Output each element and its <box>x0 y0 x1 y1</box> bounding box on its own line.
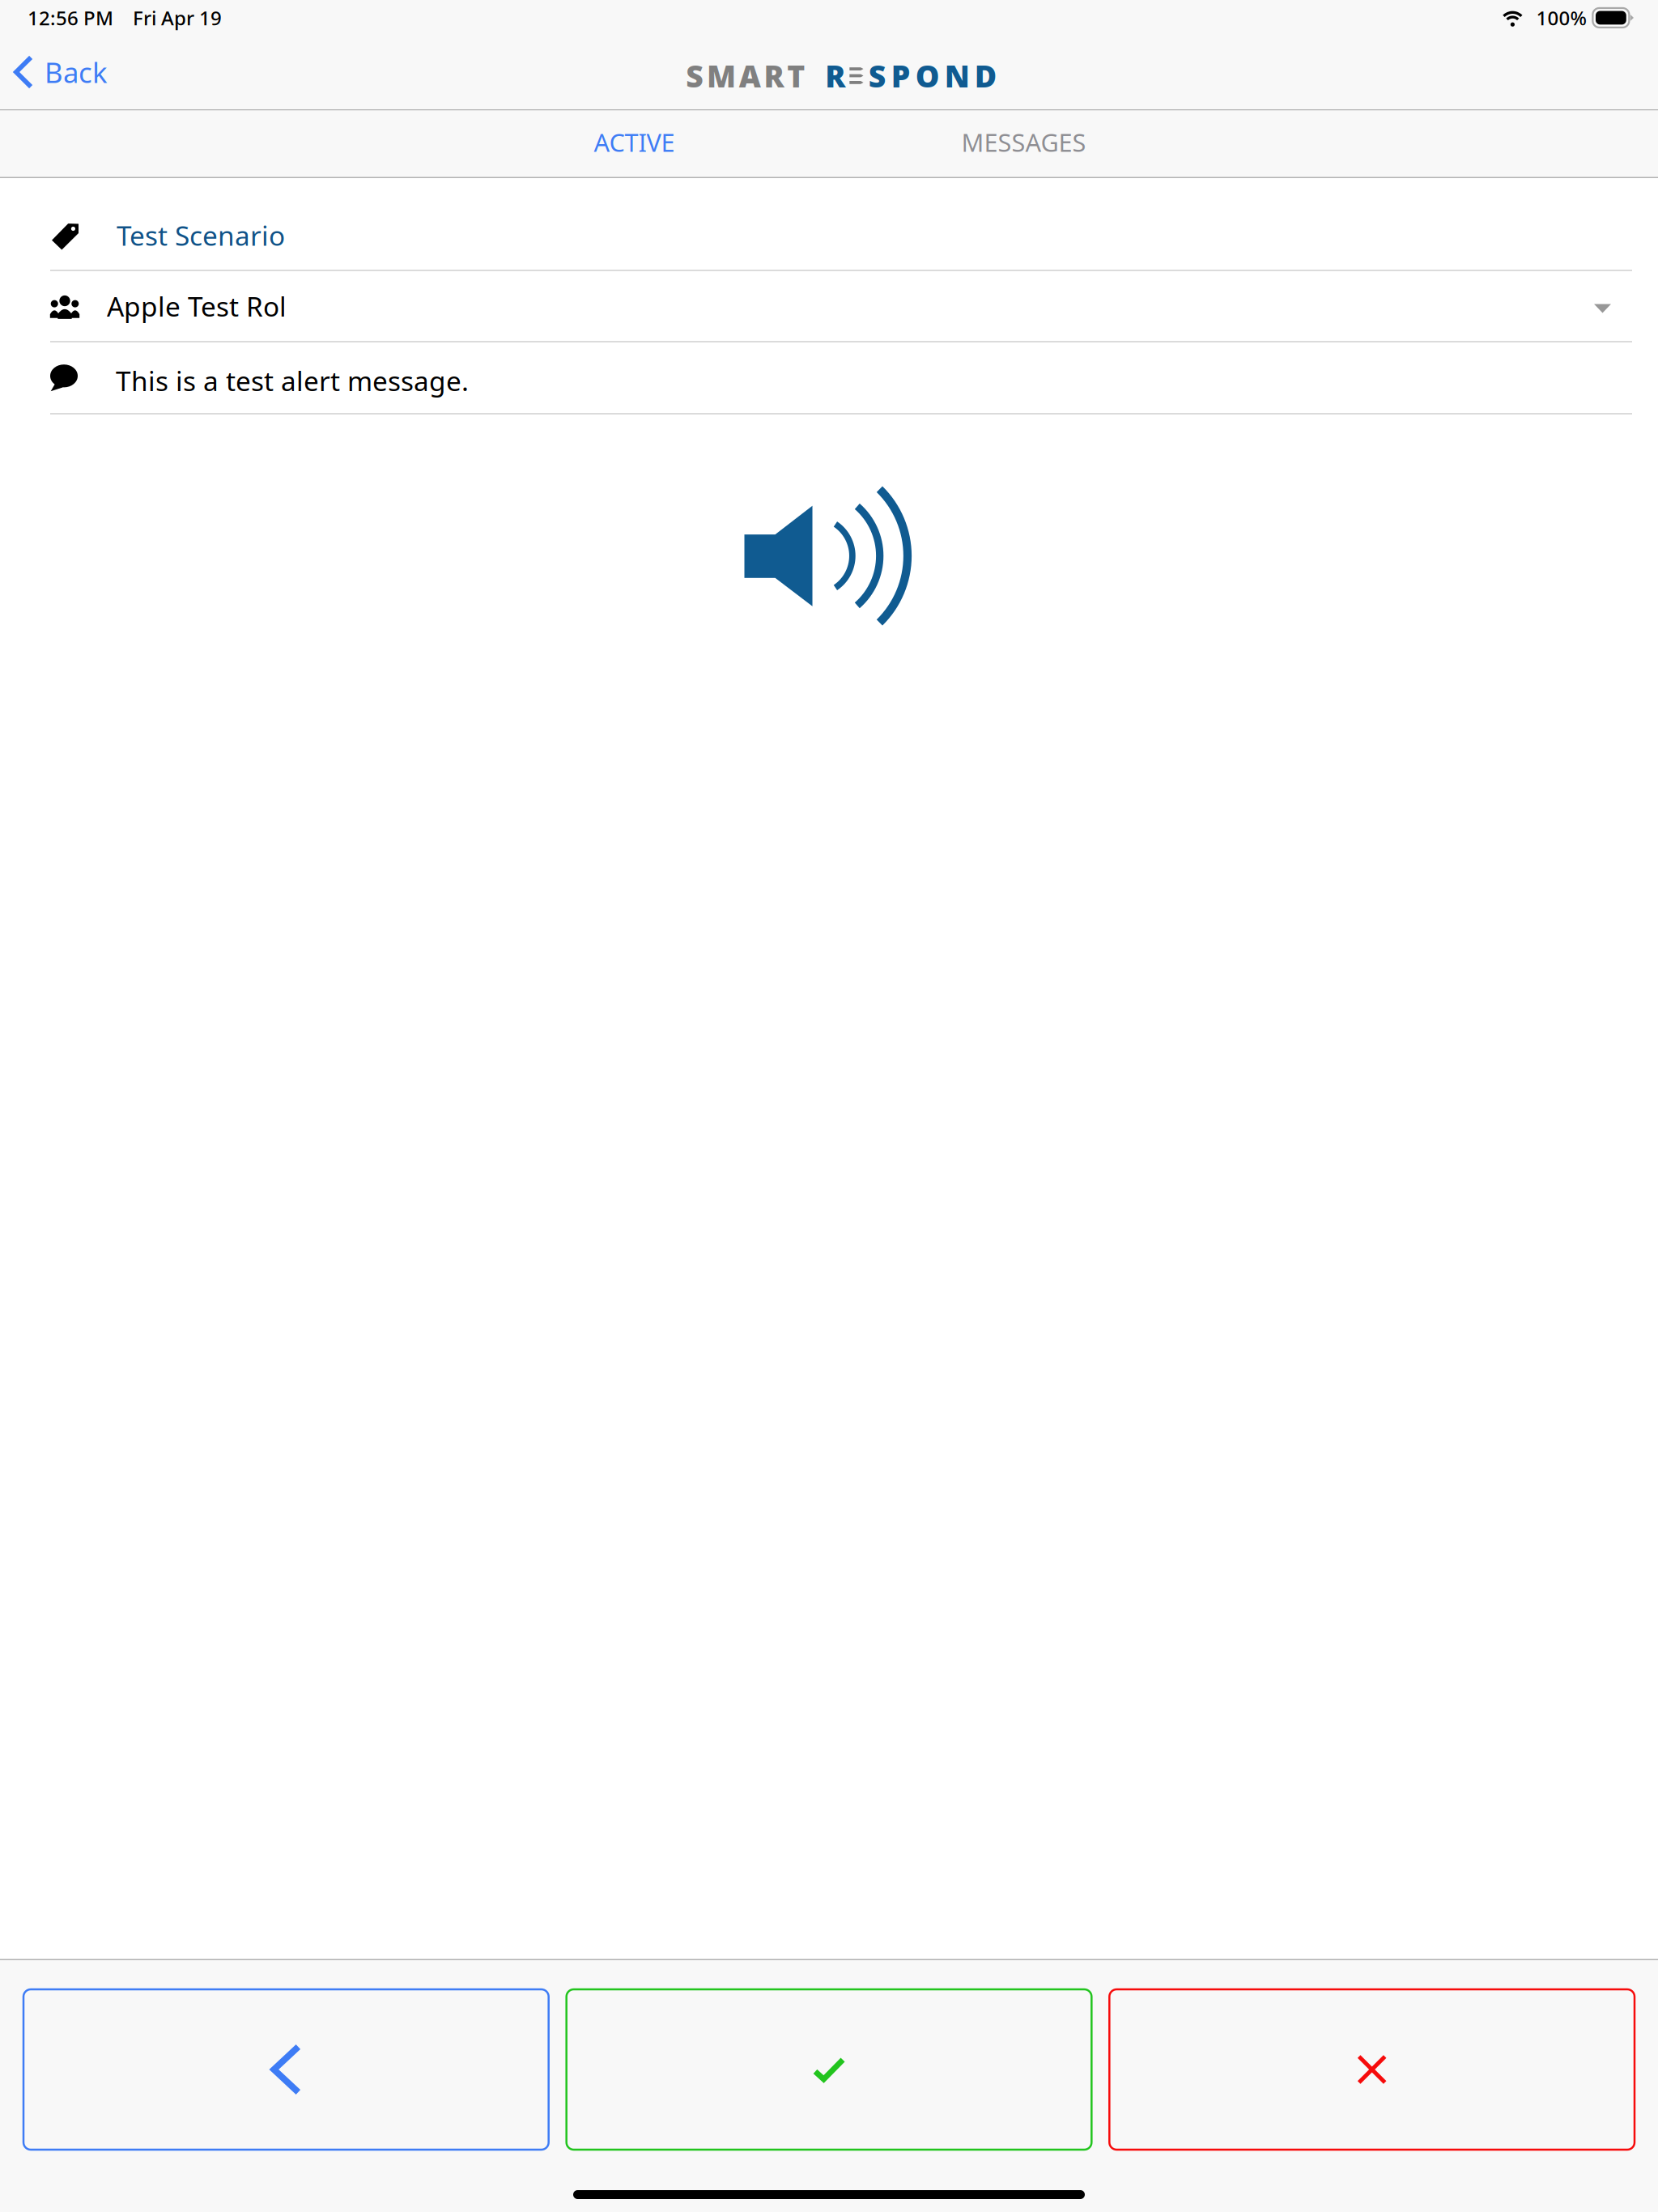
button[interactable]: Accept <box>566 1989 1092 2150</box>
button[interactable]: Test Scenario <box>0 201 1658 271</box>
staticText: S <box>868 56 886 96</box>
staticText: R <box>764 56 784 96</box>
staticText: 100% <box>1536 5 1586 31</box>
staticText: D <box>974 56 996 96</box>
staticText: T <box>787 56 805 96</box>
staticText: Test Scenario <box>117 217 285 253</box>
staticText: R <box>825 56 845 96</box>
button[interactable]: Decline <box>1109 1989 1635 2150</box>
staticText: MESSAGES <box>961 126 1086 159</box>
button[interactable]: MESSAGES <box>829 111 1218 177</box>
button[interactable]: Back <box>0 53 162 98</box>
staticText: S <box>686 56 704 96</box>
staticText: P <box>891 56 911 96</box>
staticText: M <box>707 56 736 96</box>
button[interactable]: ACTIVE <box>440 111 829 177</box>
staticText: A <box>739 56 761 96</box>
staticText: O <box>915 56 940 96</box>
button[interactable]: Apple Test Rol <box>0 271 1658 342</box>
button[interactable]: Back <box>23 1989 549 2150</box>
staticText: ACTIVE <box>594 126 675 159</box>
staticText: Back <box>45 53 108 91</box>
staticText: N <box>945 56 970 96</box>
staticText: Apple Test Rol <box>107 288 287 324</box>
staticText: Fri Apr 19 <box>133 5 222 31</box>
staticText: This is a test alert message. <box>116 363 469 399</box>
staticText: 12:56 PM <box>28 5 113 31</box>
